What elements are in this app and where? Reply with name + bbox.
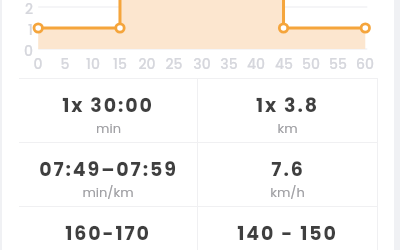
staticText: min bbox=[96, 119, 121, 137]
button[interactable]: 1x 3.8 bbox=[198, 79, 377, 142]
button[interactable]: 1x 30:00 bbox=[19, 79, 197, 142]
staticText: 55 bbox=[323, 54, 353, 74]
staticText: 50 bbox=[296, 54, 326, 74]
staticText: 2 bbox=[13, 0, 33, 19]
staticText: 1x 30:00 bbox=[62, 92, 154, 119]
staticText: 45 bbox=[269, 54, 299, 74]
staticText: min/km bbox=[82, 183, 134, 201]
staticText: 10 bbox=[78, 54, 108, 74]
staticText: 7.6 bbox=[271, 156, 305, 183]
staticText: 60 bbox=[350, 54, 380, 74]
staticText: 40 bbox=[241, 54, 271, 74]
staticText: 140 - 150 bbox=[237, 220, 338, 247]
button[interactable]: 07:49–07:59 bbox=[19, 143, 197, 206]
staticText: 1x 3.8 bbox=[256, 92, 319, 119]
staticText: 5 bbox=[50, 54, 80, 74]
button[interactable]: 140 - 150 bbox=[198, 207, 377, 250]
staticText: 1 bbox=[13, 20, 33, 40]
staticText: km bbox=[277, 119, 298, 137]
staticText: 07:49–07:59 bbox=[39, 156, 178, 183]
button[interactable]: 7.6 bbox=[198, 143, 377, 206]
staticText: 0 bbox=[23, 54, 53, 74]
staticText: 35 bbox=[214, 54, 244, 74]
staticText: 25 bbox=[159, 54, 189, 74]
staticText: 20 bbox=[132, 54, 162, 74]
staticText: km/h bbox=[270, 183, 305, 201]
staticText: 30 bbox=[187, 54, 217, 74]
staticText: 0 bbox=[13, 41, 33, 61]
button[interactable]: 160-170 bbox=[19, 207, 197, 250]
staticText: 160-170 bbox=[65, 220, 151, 247]
staticText: 15 bbox=[105, 54, 135, 74]
